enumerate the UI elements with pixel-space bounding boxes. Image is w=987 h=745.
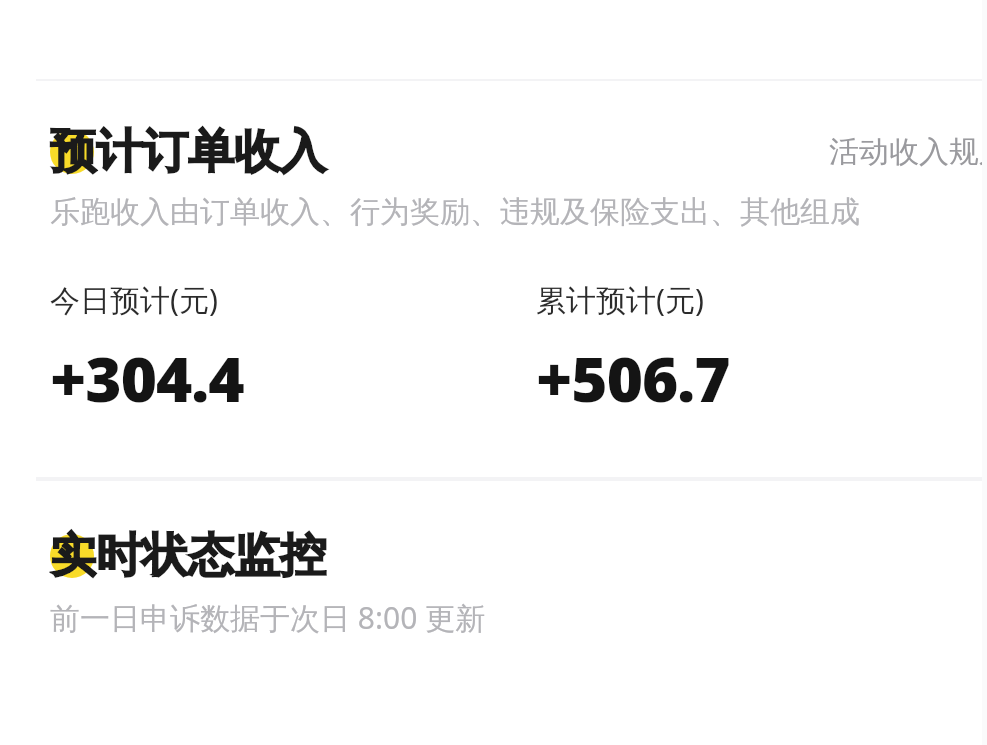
staticText: +304.4 xyxy=(50,336,244,420)
button[interactable]: 累计预计(元) xyxy=(536,279,730,420)
staticText: 累计预计(元) xyxy=(536,279,704,320)
staticText: 乐跑收入由订单收入、行为奖励、违规及保险支出、其他组成 xyxy=(50,193,860,231)
staticText: 今日预计(元) xyxy=(50,279,218,320)
button[interactable]: 活动收入规则 xyxy=(829,133,987,171)
button[interactable]: 预计订单收入 xyxy=(50,123,326,181)
staticText: +506.7 xyxy=(536,336,730,420)
button[interactable]: 实时状态监控 xyxy=(50,527,326,585)
staticText: 前一日申诉数据于次日 8:00 更新 xyxy=(50,597,486,638)
button[interactable]: 今日预计(元) xyxy=(50,279,536,420)
